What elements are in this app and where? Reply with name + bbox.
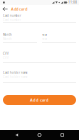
staticText: Year [42, 37, 47, 41]
button[interactable]: Card holder name [3, 63, 76, 83]
staticText: CVV [3, 56, 9, 60]
staticText: Card number [3, 14, 21, 17]
button[interactable]: Back [3, 7, 11, 11]
staticText: Month [3, 33, 12, 36]
button[interactable]: Home [33, 130, 45, 140]
button[interactable]: CVV [3, 43, 76, 63]
staticText: Card holder name [3, 75, 28, 79]
staticText: Card holder name [3, 71, 28, 74]
staticText: Month [3, 37, 12, 41]
staticText: Card number [3, 18, 21, 22]
button[interactable]: Add card [11, 6, 27, 12]
staticText: CVV [3, 52, 9, 55]
staticText: 11:08 [68, 1, 77, 4]
staticText: Add card [11, 6, 27, 12]
button[interactable]: Add card [3, 95, 76, 105]
button[interactable]: Recent apps [56, 130, 68, 140]
staticText: Add card [30, 97, 49, 103]
button[interactable]: Year [42, 23, 76, 43]
button[interactable]: Back [11, 130, 23, 140]
staticText: Year [42, 33, 47, 36]
button[interactable]: Month [3, 23, 37, 43]
button[interactable]: Card number [3, 13, 76, 23]
